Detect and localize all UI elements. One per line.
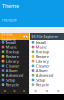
staticText: Setup [36, 77, 45, 83]
staticText: ES File Explorer [31, 34, 58, 39]
staticText: Install [6, 40, 16, 45]
staticText: Advanced [6, 73, 23, 78]
staticText: Cleaner [36, 63, 50, 68]
staticText: Restore [36, 54, 49, 59]
staticText: Theme [2, 2, 19, 9]
staticText: Album [6, 68, 18, 73]
staticText: Backup [6, 49, 19, 54]
staticText: Library [6, 58, 19, 64]
staticText: Cleaner [6, 63, 20, 68]
staticText: Setup [6, 77, 15, 83]
staticText: Recycle [36, 82, 49, 87]
staticText: Music [6, 44, 17, 50]
staticText: Library [36, 58, 49, 64]
staticText: Restore [6, 54, 19, 59]
staticText: ES File Explorer [1, 31, 16, 42]
staticText: Advanced [36, 73, 53, 78]
staticText: PREVIEW [2, 17, 17, 23]
staticText: Install [36, 40, 46, 45]
staticText: Backup [36, 49, 49, 54]
staticText: Album [36, 68, 48, 73]
staticText: Music [36, 44, 47, 50]
staticText: Recycle [6, 82, 19, 87]
